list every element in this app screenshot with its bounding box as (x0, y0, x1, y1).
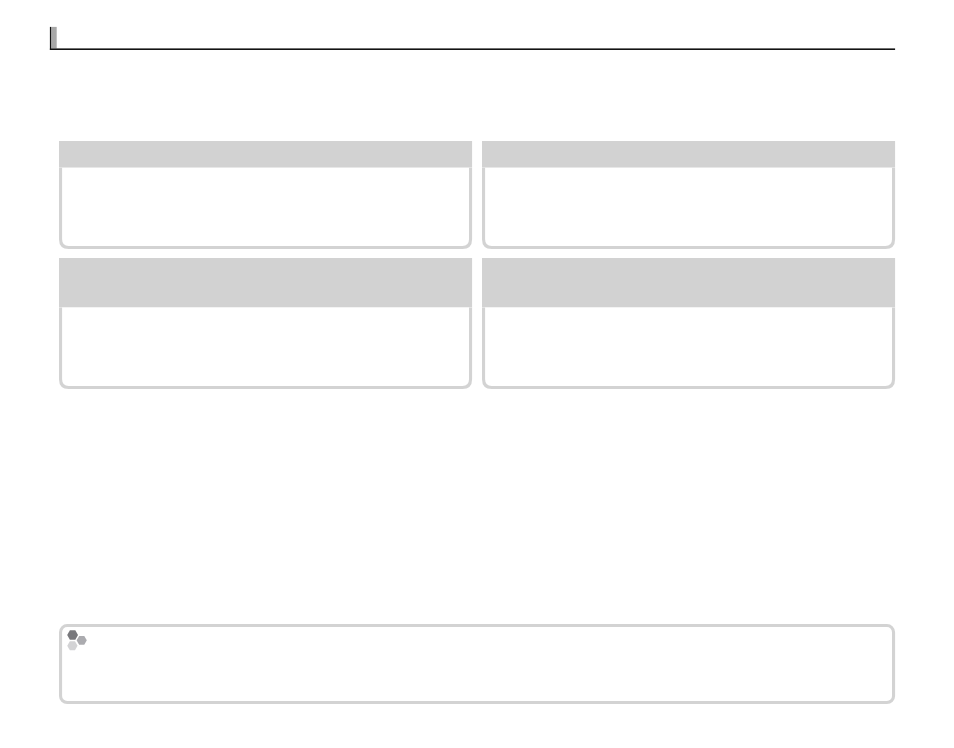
button[interactable]: Summary card 3 (59, 258, 472, 389)
button[interactable]: Summary card 2 (482, 141, 895, 249)
other: App logo (64, 627, 88, 651)
button[interactable]: Banner (59, 624, 896, 705)
button[interactable]: Summary card 1 (59, 141, 472, 249)
button[interactable]: Summary card 4 (482, 258, 895, 389)
button[interactable]: Chart (49, 26, 897, 52)
